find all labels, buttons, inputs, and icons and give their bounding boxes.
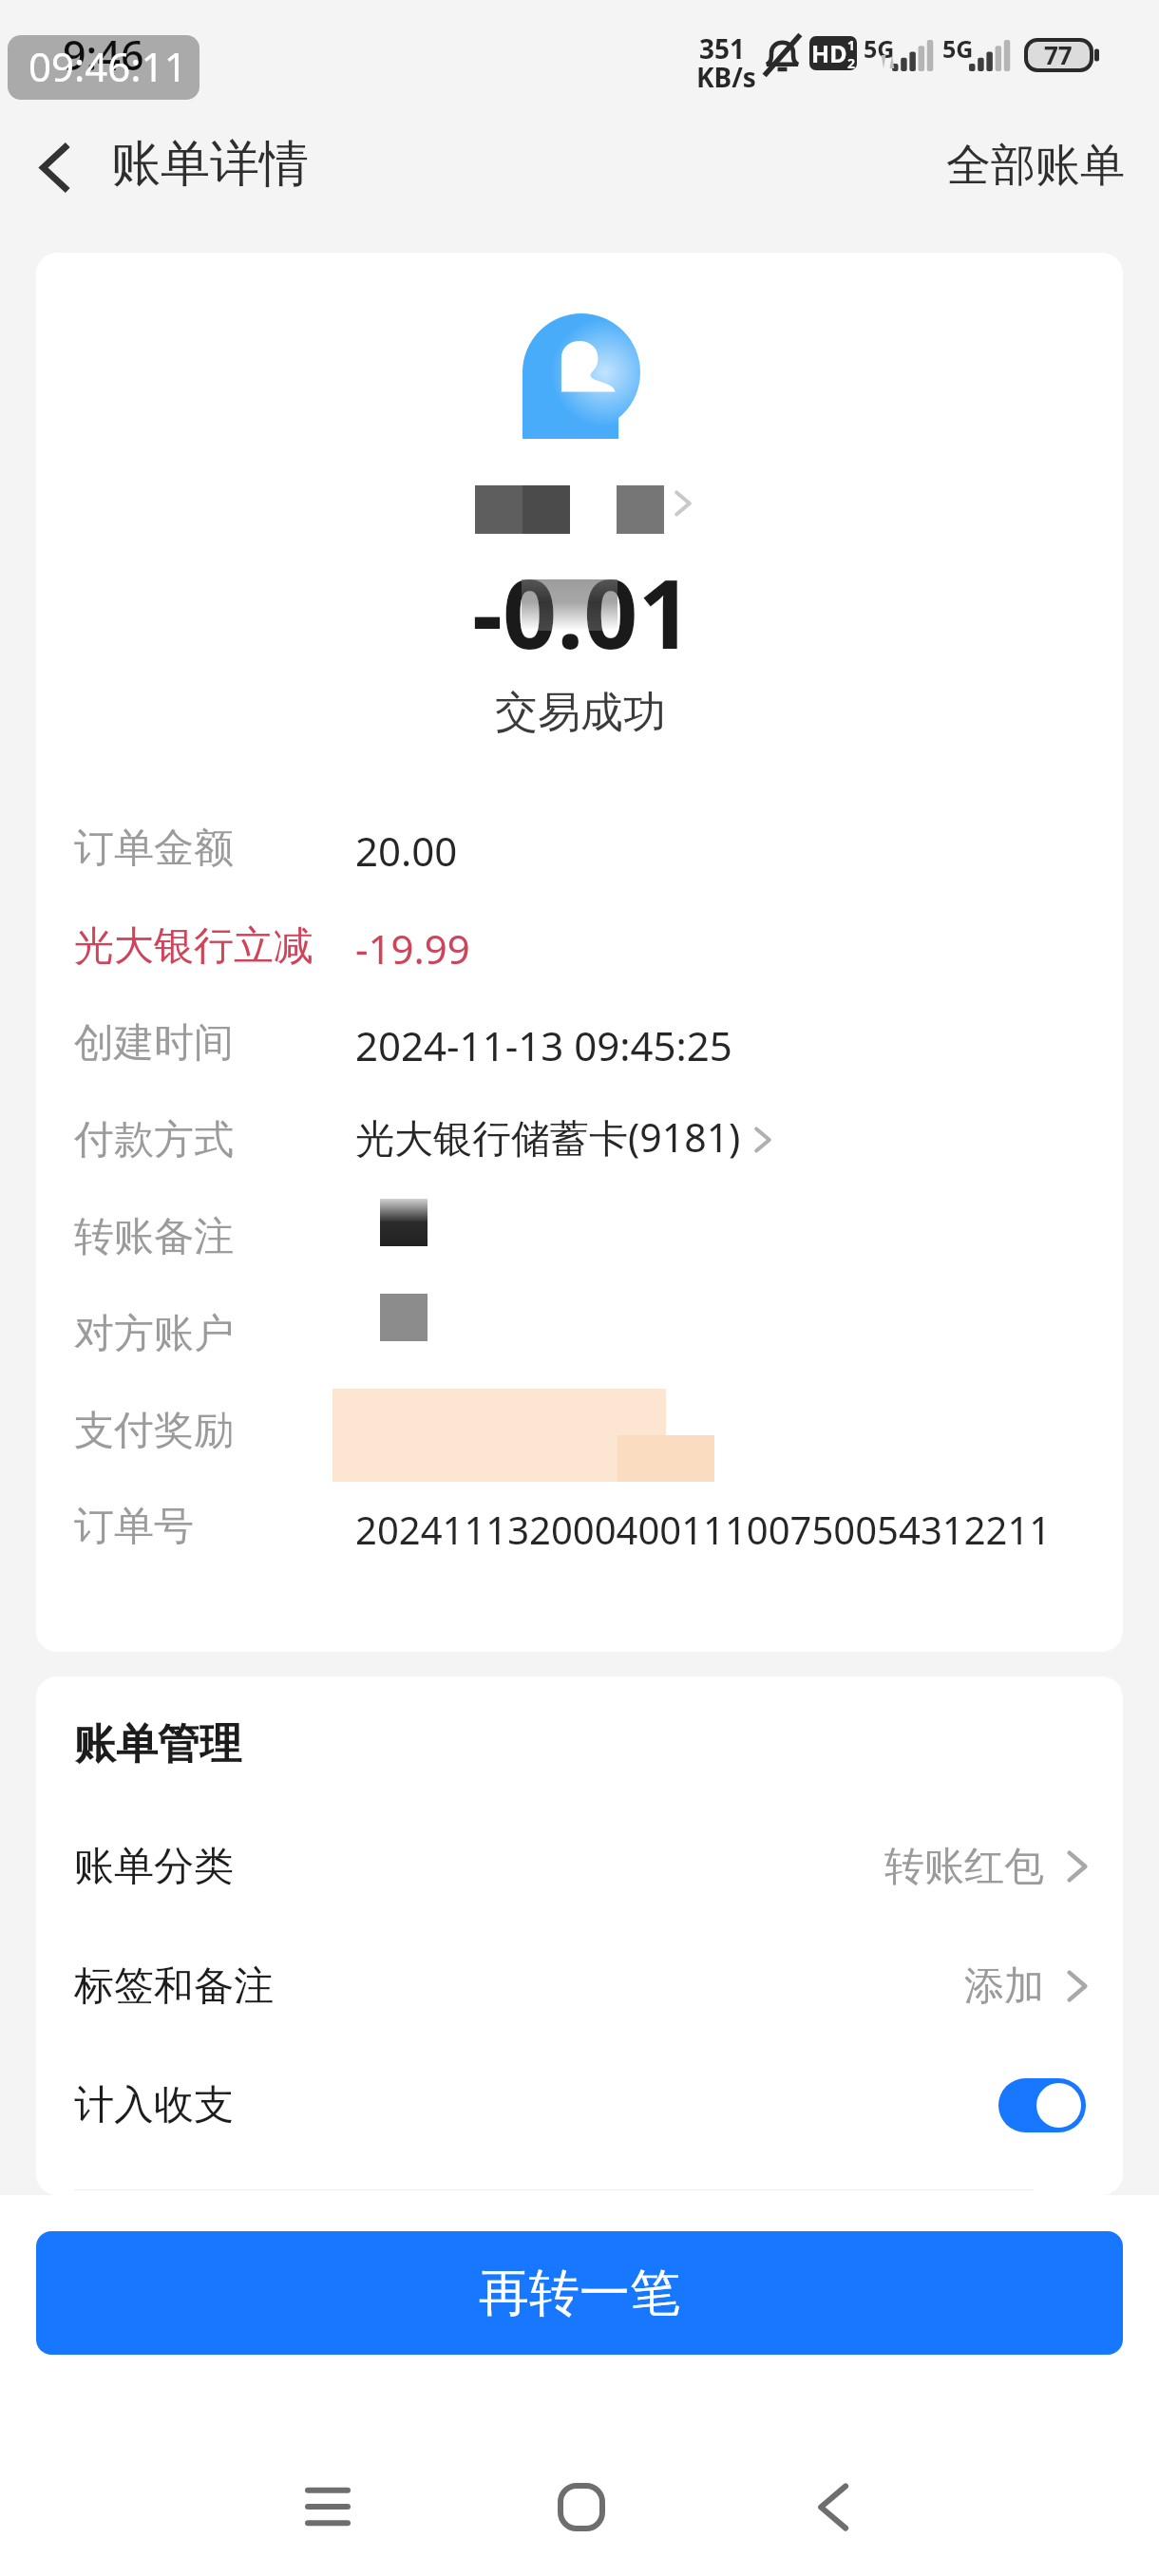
staticText: 付款方式	[74, 1115, 234, 1165]
staticText: 2	[847, 54, 856, 70]
staticText: 77	[1044, 38, 1073, 71]
button[interactable]: 全部账单	[925, 121, 1146, 211]
staticText: 5G	[864, 32, 895, 65]
staticText: 全部账单	[946, 138, 1125, 194]
staticText: 账单分类	[74, 1842, 234, 1892]
button[interactable]: 标签和备注	[36, 1926, 1123, 2046]
button[interactable]: Payee profile	[467, 478, 700, 540]
staticText: 光大银行储蓄卡(9181)	[355, 1110, 741, 1164]
button[interactable]: Back	[13, 127, 93, 207]
staticText: 订单金额	[74, 824, 234, 874]
staticText: 转账备注	[74, 1212, 234, 1262]
staticText: 2024-11-13 09:45:25	[355, 1018, 732, 1072]
staticText: 支付奖励	[74, 1406, 234, 1456]
staticText: 351	[699, 30, 746, 66]
staticText: 添加	[964, 1961, 1044, 2012]
staticText: HD	[811, 37, 847, 69]
staticText: 转账红包	[884, 1842, 1044, 1892]
staticText: 20.00	[355, 824, 458, 878]
staticText: 1	[847, 36, 856, 54]
staticText: 09:46:11	[28, 39, 187, 93]
button[interactable]: Back	[783, 2457, 882, 2556]
button[interactable]: 账单分类	[36, 1807, 1123, 1926]
staticText: 账单管理	[74, 1718, 241, 1771]
button[interactable]: 光大银行储蓄卡(9181)	[342, 1102, 769, 1185]
staticText: -0.01	[472, 547, 693, 676]
staticText: 对方账户	[74, 1309, 234, 1359]
staticText: -19.99	[355, 921, 470, 975]
button[interactable]: Home	[532, 2457, 631, 2556]
staticText: 光大银行立减	[74, 921, 313, 972]
staticText: 5G	[942, 32, 974, 65]
staticText: 标签和备注	[74, 1961, 274, 2012]
staticText: 交易成功	[495, 686, 666, 740]
staticText: 计入收支	[74, 2080, 234, 2131]
staticText: KB/s	[696, 59, 756, 95]
staticText: 9:46	[63, 27, 144, 83]
button[interactable]: 计入收支	[36, 2045, 1123, 2165]
staticText: 账单详情	[111, 133, 309, 196]
staticText: 20241113200040011100750054312211	[355, 1504, 1052, 1555]
staticText: 创建时间	[74, 1018, 234, 1069]
button[interactable]: 再转一笔	[36, 2231, 1123, 2355]
staticText: 订单号	[74, 1502, 194, 1552]
staticText: 再转一笔	[479, 2262, 680, 2325]
button[interactable]: Recents	[278, 2457, 377, 2556]
